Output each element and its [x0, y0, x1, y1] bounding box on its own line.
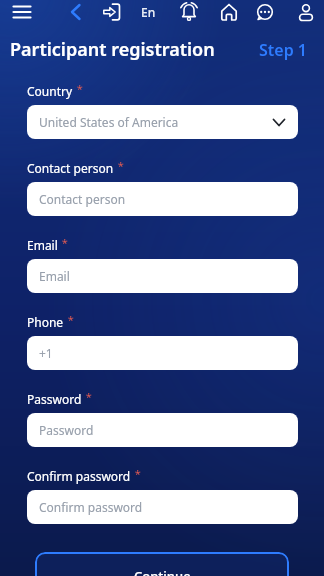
button[interactable]: [253, 0, 277, 24]
staticText: *: [132, 466, 141, 481]
staticText: United States of America: [39, 114, 179, 130]
staticText: Phone: [27, 314, 64, 330]
staticText: Participant registration: [10, 37, 215, 62]
staticText: *: [59, 235, 68, 250]
staticText: Confirm password: [27, 468, 131, 484]
button[interactable]: [217, 0, 241, 24]
staticText: +1: [39, 345, 53, 361]
staticText: *: [74, 81, 83, 96]
button[interactable]: Confirm password: [27, 490, 298, 524]
staticText: Contact person: [39, 191, 126, 207]
button[interactable]: +1: [27, 336, 298, 370]
button[interactable]: Continue: [35, 552, 289, 576]
staticText: Contact person: [27, 160, 114, 176]
button[interactable]: Email: [27, 259, 298, 293]
staticText: Password: [27, 391, 82, 407]
button[interactable]: United States of America: [27, 105, 298, 139]
button[interactable]: [100, 0, 124, 24]
staticText: Confirm password: [39, 499, 143, 515]
staticText: Country: [27, 83, 73, 99]
button[interactable]: [294, 0, 318, 24]
button[interactable]: [63, 0, 87, 24]
button[interactable]: [177, 0, 201, 24]
button[interactable]: Contact person: [27, 182, 298, 216]
button[interactable]: Password: [27, 413, 298, 447]
staticText: Step 1: [259, 39, 307, 61]
staticText: Email: [27, 237, 58, 253]
staticText: *: [83, 389, 92, 404]
button[interactable]: [10, 0, 34, 24]
staticText: Continue: [134, 567, 191, 576]
staticText: En: [141, 4, 156, 20]
staticText: Password: [39, 422, 94, 438]
staticText: *: [65, 312, 74, 327]
button[interactable]: En: [141, 4, 156, 20]
staticText: *: [115, 158, 124, 173]
staticText: Email: [39, 268, 70, 284]
button[interactable]: Step 1: [259, 39, 307, 61]
